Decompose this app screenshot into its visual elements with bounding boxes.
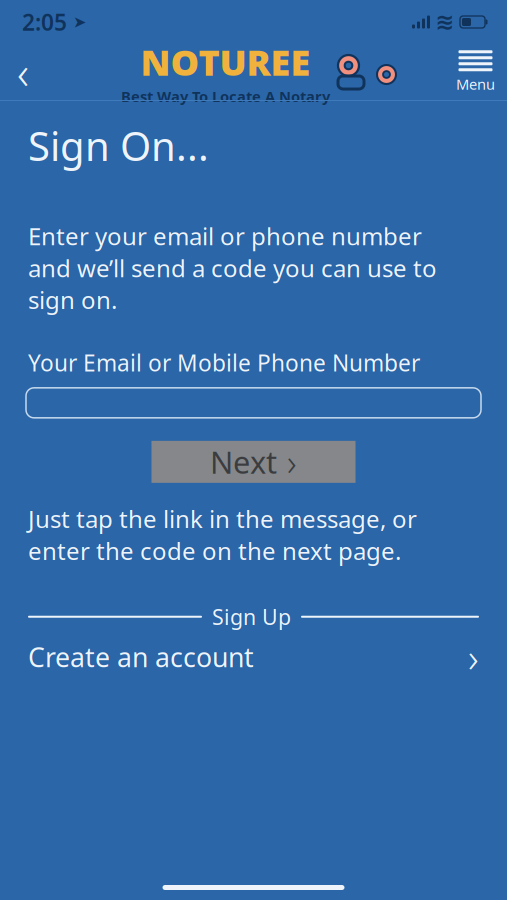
staticText: Your Email or Mobile Phone Number [28,348,420,378]
staticText: NOTUREE [140,38,310,86]
staticText: Menu [456,74,495,94]
staticText: ➤ [73,13,86,31]
staticText: Enter your email or phone number and we’… [28,220,437,316]
staticText: Sign Up [212,603,291,631]
button[interactable]: Create an account [0,631,507,683]
staticText: 2:05 [22,7,67,37]
staticText: › [287,438,297,486]
staticText: Sign On... [28,119,209,172]
staticText: ‹ [17,42,29,102]
button[interactable]: Menu [444,44,507,100]
button[interactable]: Your Email or Mobile Phone Number [0,378,507,418]
staticText: Best Way To Locate A Notary [121,87,330,106]
button[interactable]: Back [0,44,46,100]
staticText: ≋ [435,9,454,35]
staticText: Create an account [28,639,254,675]
staticText: Next [210,441,277,482]
staticText: › [468,630,479,683]
button[interactable]: Next [151,441,355,483]
staticText: Just tap the link in the message, or ent… [28,503,417,566]
